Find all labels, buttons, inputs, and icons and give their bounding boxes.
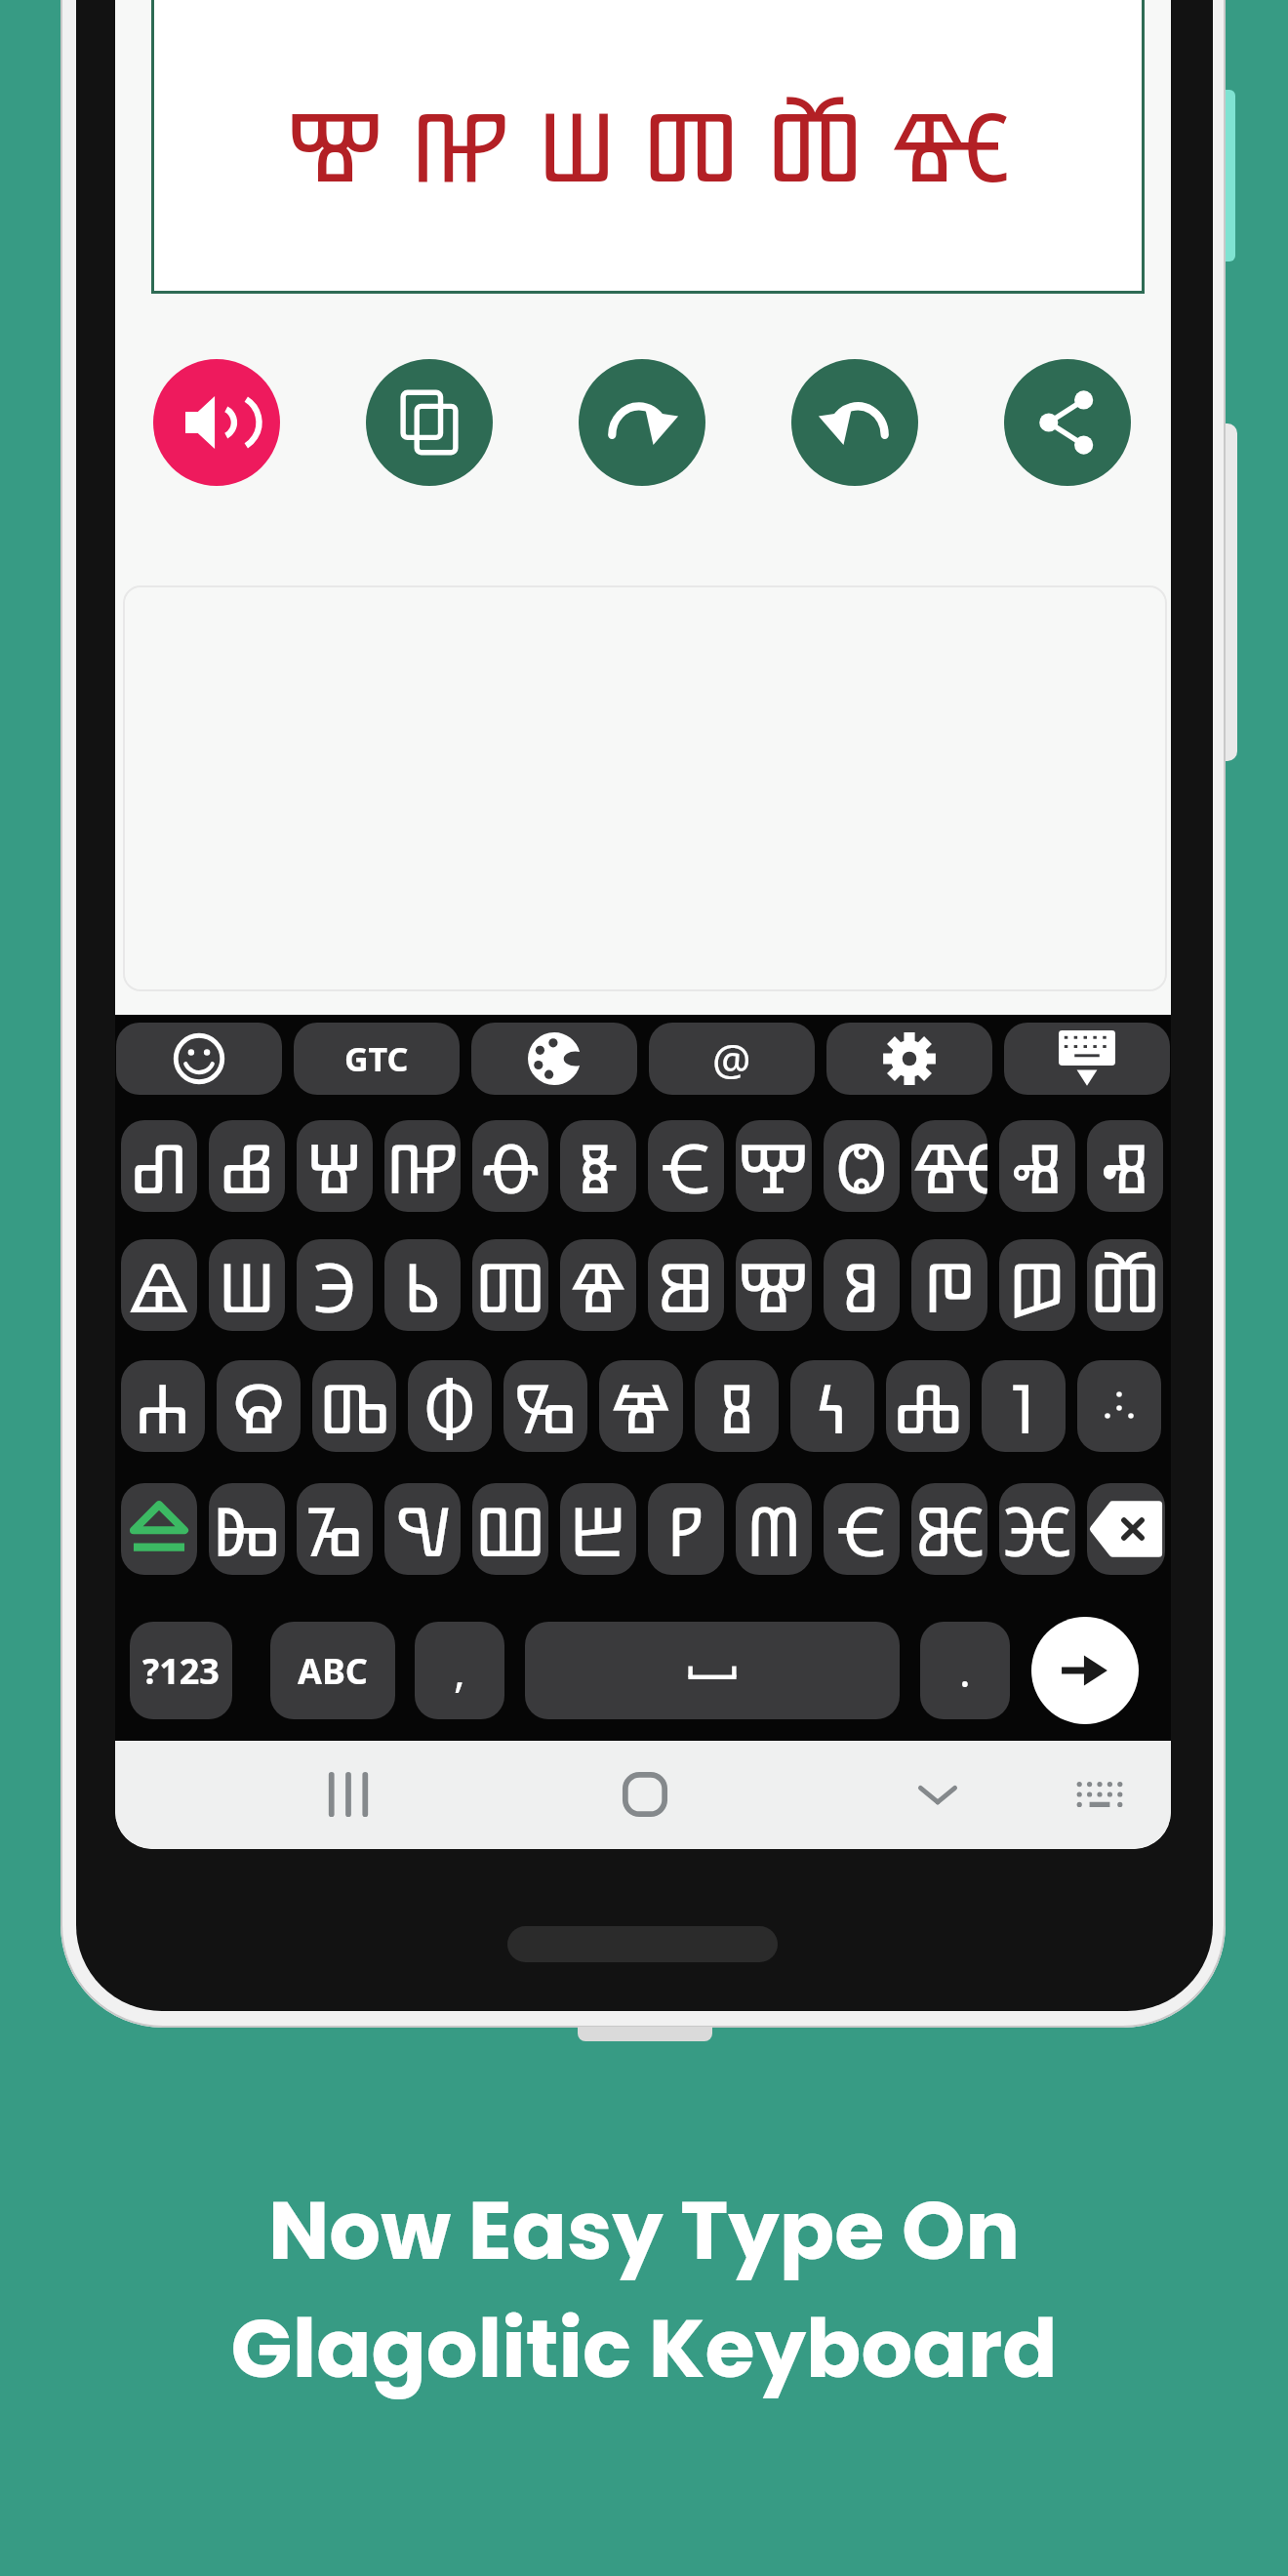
button[interactable]: Ⱂ <box>911 1239 987 1331</box>
staticText: Ⱊ <box>130 1120 189 1212</box>
button[interactable]: , <box>415 1622 504 1719</box>
staticText: Ⱄ <box>231 1360 287 1452</box>
button[interactable]: Ⰱ <box>560 1483 636 1575</box>
staticText: Now Easy Type On Glagolitic Keyboard <box>0 2174 1288 2405</box>
button[interactable]: @ <box>649 1023 815 1095</box>
button[interactable]: Ⰺ Ⰼ Ⱎ Ⱅ Ⰶ Ⱙ <box>151 0 1145 294</box>
button[interactable]: Ⰰ <box>121 1360 205 1452</box>
button[interactable] <box>579 359 705 486</box>
button[interactable]: Ⰴ <box>312 1360 396 1452</box>
button[interactable] <box>1074 1769 1125 1820</box>
staticText: Ⰲ <box>474 1483 547 1575</box>
button[interactable]: Ⱁ <box>824 1239 900 1331</box>
button[interactable]: Ⰷ <box>209 1120 285 1212</box>
staticText: Ⱁ <box>842 1239 881 1331</box>
staticText: Ⱙ <box>911 1120 987 1212</box>
staticText: Ⰽ <box>817 1360 848 1452</box>
staticText: Ⰶ <box>1089 1239 1162 1331</box>
button[interactable]: Ⱗ <box>999 1483 1075 1575</box>
button[interactable] <box>1004 1023 1170 1095</box>
button[interactable]: Ⱛ <box>560 1120 636 1212</box>
staticText: Ⱐ <box>1102 1120 1149 1212</box>
button[interactable]: Ⱉ <box>824 1120 900 1212</box>
staticText: Ⱅ <box>474 1239 547 1331</box>
staticText: ABC <box>298 1647 368 1695</box>
button[interactable]: Ⰵ <box>297 1239 373 1331</box>
button[interactable]: . <box>920 1622 1010 1719</box>
button[interactable] <box>916 1773 959 1816</box>
button[interactable] <box>1031 1617 1139 1724</box>
staticText: Ⱑ <box>127 1239 191 1331</box>
button[interactable] <box>525 1622 900 1719</box>
staticText: Ⱏ <box>1012 1120 1063 1212</box>
button[interactable]: Ⱎ <box>209 1239 285 1331</box>
button[interactable]: Ⱔ <box>824 1483 900 1575</box>
button[interactable]: Ⱙ <box>911 1120 987 1212</box>
button[interactable]: Ⰼ <box>384 1120 461 1212</box>
button[interactable]: Ⰲ <box>472 1483 548 1575</box>
staticText: Ⱆ <box>657 1239 715 1331</box>
staticText: Ⰺ <box>737 1239 811 1331</box>
staticText: Ⰴ <box>318 1360 391 1452</box>
button[interactable]: Ⱇ <box>408 1360 492 1452</box>
button[interactable] <box>826 1023 992 1095</box>
staticText: Ⱇ <box>423 1360 477 1452</box>
button[interactable]: Ⰹ <box>736 1120 812 1212</box>
staticText: Ⰸ <box>212 1483 282 1575</box>
button[interactable]: Ⱄ <box>217 1360 301 1452</box>
button[interactable]: Ⰻ <box>695 1360 779 1452</box>
button[interactable]: Ⱏ <box>999 1120 1075 1212</box>
staticText: Ⰵ <box>312 1239 358 1331</box>
button[interactable]: Ⱚ <box>472 1120 548 1212</box>
button[interactable]: Ⰿ <box>736 1483 812 1575</box>
button[interactable]: Ⰳ <box>503 1360 587 1452</box>
button[interactable] <box>471 1023 637 1095</box>
staticText: Ⱎ <box>218 1239 276 1331</box>
staticText: Ⰹ <box>737 1120 811 1212</box>
button[interactable]: Ⱐ <box>1087 1120 1163 1212</box>
button[interactable]: Ⱔ <box>648 1120 724 1212</box>
staticText: Ⱃ <box>403 1239 442 1331</box>
button[interactable] <box>622 1771 668 1818</box>
staticText: Ⰾ <box>893 1360 964 1452</box>
button[interactable] <box>116 1023 282 1095</box>
button[interactable] <box>325 1771 372 1818</box>
button[interactable] <box>1004 359 1131 486</box>
button[interactable]: Ⰺ <box>736 1239 812 1331</box>
button[interactable]: Ⰸ <box>209 1483 285 1575</box>
staticText: Ⰱ <box>569 1483 627 1575</box>
button[interactable]: Ⱓ <box>999 1239 1075 1331</box>
button[interactable]: GTC <box>294 1023 460 1095</box>
button[interactable]: Ⱅ <box>472 1239 548 1331</box>
button[interactable]: Ⱘ <box>911 1483 987 1575</box>
button[interactable]: Ⱃ <box>384 1239 461 1331</box>
button[interactable]: Ⱆ <box>648 1239 724 1331</box>
staticText: Ⱔ <box>837 1483 887 1575</box>
button[interactable] <box>366 359 493 486</box>
button[interactable]: ABC <box>270 1622 395 1719</box>
staticText: Ⰷ <box>218 1120 276 1212</box>
button[interactable]: Ⱍ <box>599 1360 683 1452</box>
staticText: Ⱍ <box>610 1360 672 1452</box>
button[interactable]: Ⱋ <box>297 1120 373 1212</box>
button[interactable] <box>1077 1360 1161 1452</box>
button[interactable] <box>153 359 280 486</box>
button[interactable]: Ⱀ <box>648 1483 724 1575</box>
staticText: Ⱋ <box>306 1120 363 1212</box>
button[interactable]: Ⱖ <box>560 1239 636 1331</box>
button[interactable]: Ⱑ <box>121 1239 197 1331</box>
button[interactable] <box>1087 1483 1165 1575</box>
button[interactable]: Ⰽ <box>790 1360 874 1452</box>
button[interactable]: Ⱌ <box>384 1483 461 1575</box>
button[interactable]: ?123 <box>130 1622 232 1719</box>
button[interactable]: Ⰾ <box>886 1360 970 1452</box>
button[interactable]: Ⱈ <box>297 1483 373 1575</box>
button[interactable]: Ⰶ <box>1087 1239 1163 1331</box>
button[interactable]: Ⱜ <box>982 1360 1066 1452</box>
staticText: Ⰼ <box>385 1120 461 1212</box>
button[interactable] <box>791 359 918 486</box>
staticText: Ⰳ <box>512 1360 579 1452</box>
button[interactable]: Ⱊ <box>121 1120 197 1212</box>
button[interactable] <box>121 1483 197 1575</box>
staticText: Ⱔ <box>662 1120 711 1212</box>
